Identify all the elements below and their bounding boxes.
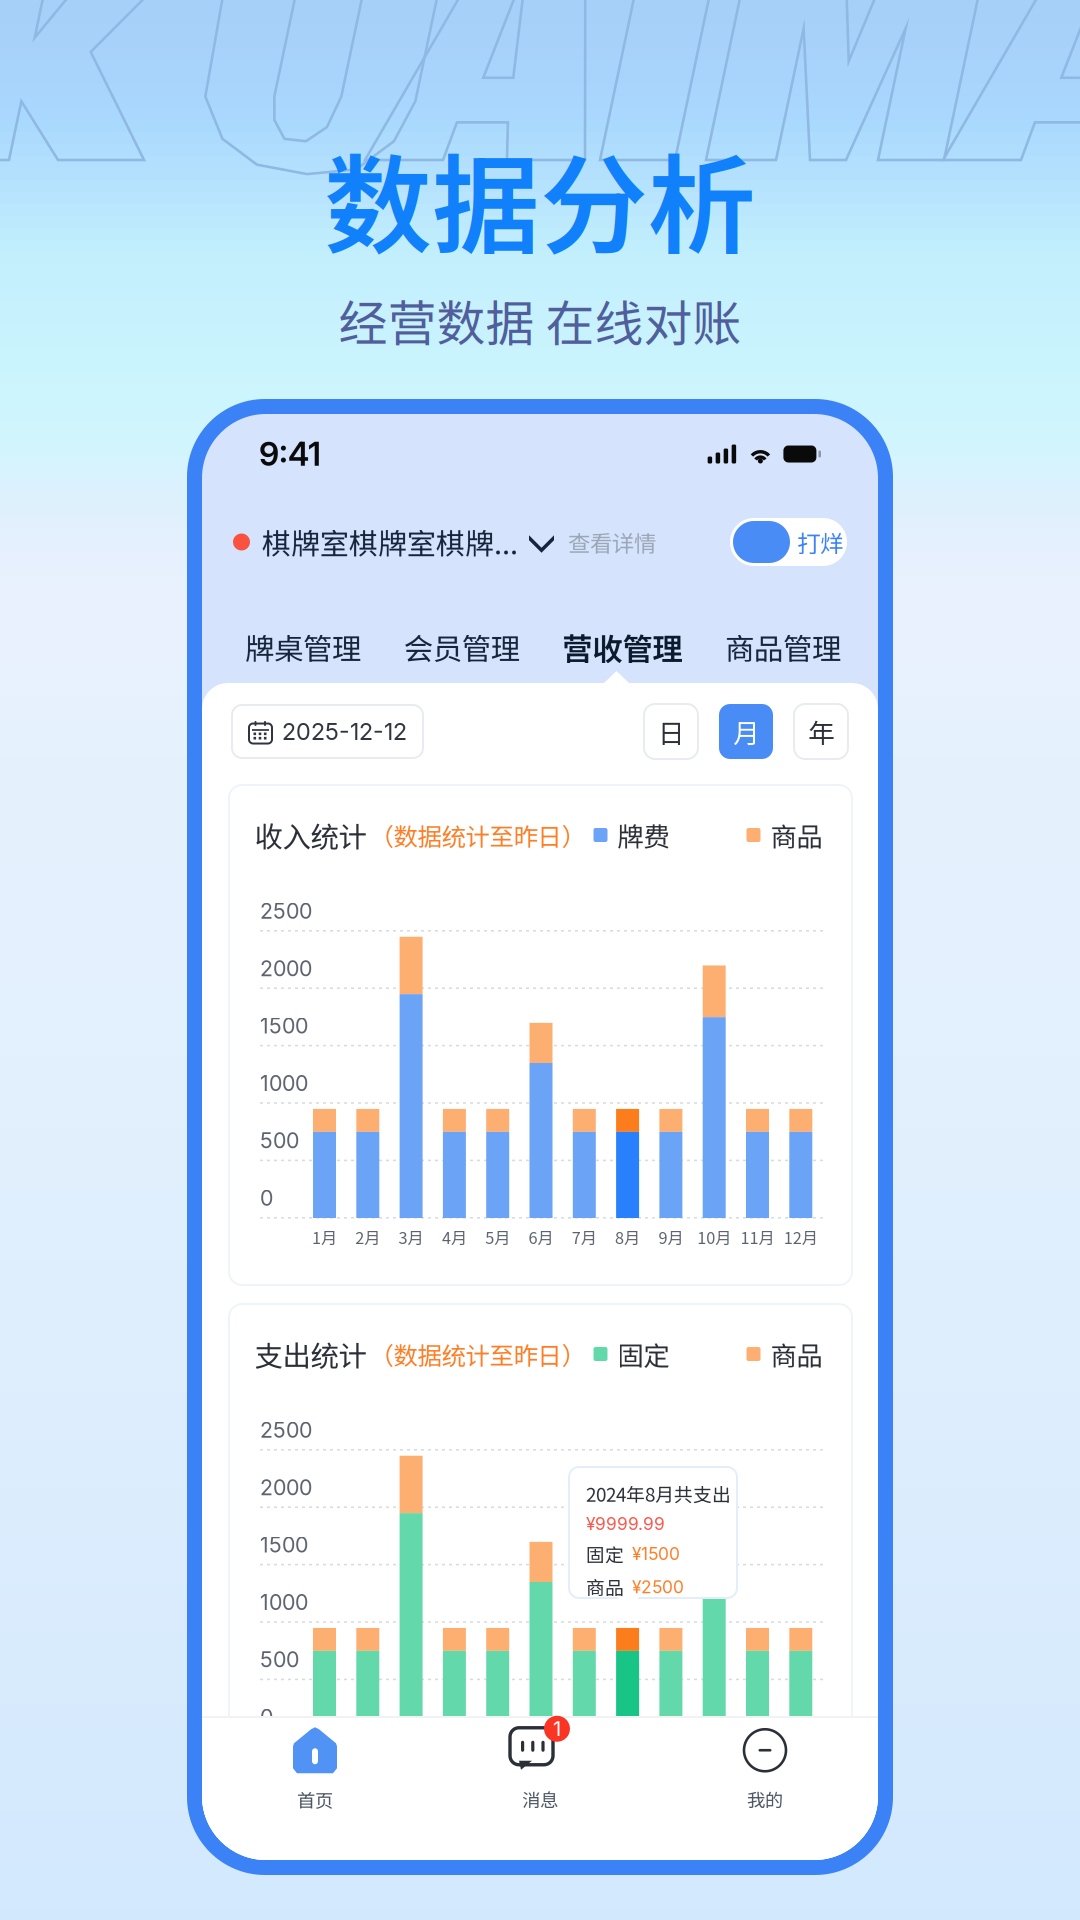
staticText: 9:41 <box>259 434 321 474</box>
staticText: 1500 <box>260 1532 308 1558</box>
staticText: 2500 <box>260 1417 312 1443</box>
button[interactable]: 年 <box>794 704 848 759</box>
staticText: 收入统计 <box>254 814 366 856</box>
staticText: 商品 <box>770 816 822 854</box>
staticText: 5月 <box>485 1225 510 1249</box>
staticText: 0 <box>260 1704 273 1730</box>
staticText: 4月 <box>442 1225 467 1249</box>
staticText: 2024年8月共支出 <box>586 1480 731 1507</box>
staticText: 月 <box>733 712 759 751</box>
staticText: 500 <box>260 1647 299 1672</box>
button[interactable]: 打烊 <box>730 518 847 566</box>
staticText: 会员管理 <box>404 626 520 668</box>
staticText: 1000 <box>260 1589 308 1615</box>
staticText: 11月 <box>740 1225 774 1249</box>
button[interactable]: 牌桌管理 <box>245 626 361 668</box>
staticText: 10月 <box>697 1225 731 1249</box>
staticText: 牌桌管理 <box>245 626 361 668</box>
staticText: （数据统计至昨日） <box>369 1336 585 1372</box>
staticText: 3月 <box>399 1225 424 1249</box>
staticText: 棋牌室棋牌室棋牌... <box>262 521 518 563</box>
staticText: 1500 <box>260 1013 308 1039</box>
button[interactable]: 首页 <box>202 1720 427 1820</box>
button[interactable]: 1 <box>427 1720 652 1820</box>
staticText: 1月 <box>312 1225 337 1249</box>
staticText: 9月 <box>658 1225 683 1249</box>
staticText: 12月 <box>784 1225 818 1249</box>
button[interactable]: 营收管理 <box>562 625 682 669</box>
staticText: 商品管理 <box>725 626 841 668</box>
staticText: 固定 <box>617 1335 669 1373</box>
staticText: 打烊 <box>797 525 843 559</box>
staticText: 2000 <box>260 955 312 981</box>
staticText: 2月 <box>355 1225 380 1249</box>
staticText: ¥1500 <box>632 1543 680 1564</box>
button[interactable]: 月 <box>719 704 773 759</box>
staticText: 消息 <box>522 1786 558 1812</box>
staticText: 查看详情 <box>568 526 656 558</box>
button[interactable]: 商品管理 <box>725 626 841 668</box>
button[interactable]: 会员管理 <box>404 626 520 668</box>
staticText: ¥2500 <box>632 1576 684 1597</box>
staticText: 6月 <box>528 1225 553 1249</box>
staticText: 数据分析 <box>324 120 756 276</box>
button[interactable]: 日 <box>644 704 698 759</box>
staticText: 2025-12-12 <box>282 717 407 746</box>
staticText: 首页 <box>297 1786 333 1813</box>
staticText: 支出统计 <box>254 1333 366 1375</box>
staticText: （数据统计至昨日） <box>369 817 585 853</box>
staticText: 营收管理 <box>562 625 682 669</box>
staticText: 1 <box>553 1716 561 1741</box>
staticText: 牌费 <box>617 816 669 854</box>
staticText: 商品 <box>586 1573 624 1600</box>
staticText: ¥9999.99 <box>586 1513 665 1534</box>
staticText: 我的 <box>747 1786 783 1812</box>
staticText: 7月 <box>572 1225 597 1249</box>
staticText: 经营数据 在线对账 <box>338 285 741 355</box>
staticText: 固定 <box>586 1540 624 1567</box>
staticText: 2000 <box>260 1474 312 1500</box>
staticText: 1000 <box>260 1070 308 1096</box>
staticText: 商品 <box>770 1335 822 1373</box>
staticText: 8月 <box>615 1225 640 1249</box>
staticText: 2500 <box>260 898 312 924</box>
staticText: 500 <box>260 1128 299 1153</box>
button[interactable]: 我的 <box>652 1720 877 1820</box>
staticText: 日 <box>658 712 684 751</box>
staticText: 0 <box>260 1185 273 1211</box>
staticText: 年 <box>808 712 834 751</box>
button[interactable]: 2025-12-12 <box>232 705 423 758</box>
